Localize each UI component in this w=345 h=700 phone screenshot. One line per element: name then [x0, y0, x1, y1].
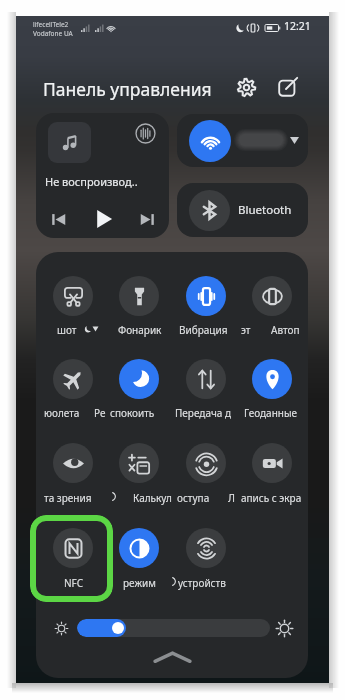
button[interactable]: Raise brightness [274, 618, 294, 638]
button[interactable] [40, 522, 106, 584]
button[interactable] [40, 437, 106, 499]
staticText: юолета [44, 406, 80, 420]
staticText: Геоданные [244, 406, 298, 420]
button[interactable] [173, 522, 239, 584]
button[interactable]: Cast [132, 120, 158, 146]
button[interactable] [106, 437, 172, 499]
staticText: режим [123, 576, 156, 590]
staticText: Передача д [175, 406, 232, 420]
button[interactable] [106, 522, 172, 584]
button[interactable] [106, 353, 172, 415]
button[interactable] [173, 353, 239, 415]
staticText: оступа [177, 491, 210, 505]
button[interactable] [106, 270, 172, 332]
staticText: Vodafone UA [33, 29, 73, 38]
button[interactable] [239, 270, 305, 332]
staticText: спокоить [110, 406, 155, 420]
staticText: lifecellTele2 [33, 20, 69, 29]
staticText: Ре [94, 406, 106, 420]
staticText: Не воспроизвод.. [45, 174, 138, 189]
button[interactable] [239, 353, 305, 415]
button[interactable]: Lower brightness [53, 620, 69, 636]
button[interactable] [173, 270, 239, 332]
staticText: Панель управления [43, 77, 212, 101]
staticText: эт [241, 323, 251, 337]
staticText: шот [57, 323, 77, 337]
button[interactable]: Play [88, 203, 120, 235]
staticText: апись с экра [241, 491, 302, 505]
button[interactable]: Previous [43, 204, 73, 234]
staticText: Л [228, 491, 235, 505]
button[interactable]: Bluetooth [177, 183, 308, 237]
button[interactable]: Next [132, 204, 162, 234]
staticText: Фонарик [118, 323, 162, 337]
staticText: Вибрация [179, 323, 228, 337]
staticText: Bluetooth [238, 202, 292, 218]
button[interactable] [40, 353, 106, 415]
button[interactable]: Cast [36, 113, 169, 238]
staticText: 12:21 [284, 19, 311, 33]
staticText: NFC [64, 576, 84, 590]
staticText: та зрения [44, 491, 92, 505]
button[interactable] [239, 437, 305, 499]
button[interactable] [40, 270, 106, 332]
staticText: устройств [178, 576, 226, 590]
staticText: Калькул [133, 491, 172, 505]
button[interactable]: Brightness [77, 619, 270, 637]
button[interactable]: Settings [231, 72, 261, 102]
button[interactable] [177, 114, 308, 167]
staticText: Автоп [271, 323, 300, 337]
button[interactable] [173, 437, 239, 499]
button[interactable]: Edit [273, 72, 303, 102]
